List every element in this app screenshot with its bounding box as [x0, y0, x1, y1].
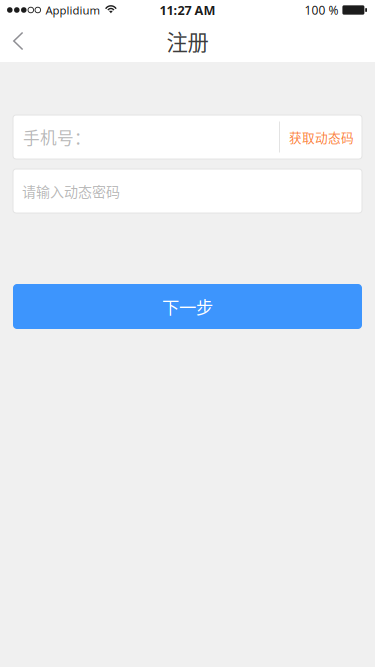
staticText: 请输入动态密码 [22, 181, 120, 201]
staticText: Applidium [46, 2, 101, 18]
staticText: 注册 [166, 26, 208, 56]
staticText: 11:27 AM [159, 1, 215, 19]
button[interactable]: 获取动态码 [280, 115, 362, 159]
staticText: 获取动态码 [289, 128, 354, 146]
staticText: 100 % [304, 2, 338, 18]
button[interactable]: Back [0, 20, 45, 62]
staticText: 下一步 [162, 294, 213, 319]
staticText: 手机号： [23, 125, 91, 149]
button[interactable]: 下一步 [13, 284, 362, 329]
